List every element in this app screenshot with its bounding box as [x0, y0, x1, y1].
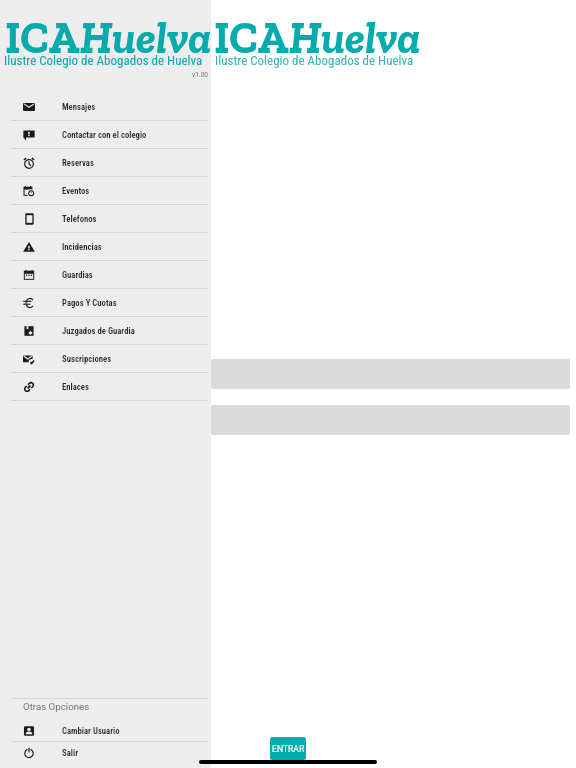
- button[interactable]: Telefonos: [0, 205, 211, 232]
- staticText: ICA: [214, 11, 289, 64]
- staticText: Telefonos: [62, 214, 97, 224]
- staticText: Huelva: [80, 11, 212, 64]
- button[interactable]: Pagos Y Cuotas: [0, 289, 211, 316]
- button[interactable]: Suscripciones: [0, 345, 211, 372]
- staticText: Reservas: [62, 158, 94, 168]
- button[interactable]: Cambiar Usuario: [0, 721, 211, 741]
- button[interactable]: Mensajes: [0, 93, 211, 120]
- staticText: Huelva: [289, 11, 421, 64]
- staticText: Salir: [62, 748, 79, 758]
- staticText: Pagos Y Cuotas: [62, 298, 117, 308]
- button[interactable]: Salir: [0, 742, 211, 763]
- staticText: Incidencias: [62, 242, 102, 252]
- staticText: Suscripciones: [62, 354, 112, 364]
- staticText: ICA: [5, 11, 80, 64]
- button[interactable]: Eventos: [0, 177, 211, 204]
- staticText: Otras Opciones: [23, 701, 90, 712]
- button[interactable]: Contactar con el colegio: [0, 121, 211, 148]
- button[interactable]: Juzgados de Guardia: [0, 317, 211, 344]
- staticText: Cambiar Usuario: [62, 726, 120, 736]
- staticText: Mensajes: [62, 102, 96, 112]
- staticText: v1.00: [192, 71, 209, 79]
- button[interactable]: ENTRAR: [270, 737, 306, 760]
- button[interactable]: Incidencias: [0, 233, 211, 260]
- staticText: ENTRAR: [272, 744, 305, 754]
- button[interactable]: Enlaces: [0, 373, 211, 400]
- staticText: Ilustre Colegio de Abogados de Huelva: [215, 53, 414, 68]
- button[interactable]: Reservas: [0, 149, 211, 176]
- button[interactable]: Guardias: [0, 261, 211, 288]
- staticText: Guardias: [62, 270, 93, 280]
- staticText: Ilustre Colegio de Abogados de Huelva: [4, 53, 203, 68]
- staticText: Juzgados de Guardia: [62, 326, 135, 336]
- staticText: Enlaces: [62, 382, 89, 392]
- staticText: Eventos: [62, 186, 90, 196]
- staticText: Contactar con el colegio: [62, 130, 147, 140]
